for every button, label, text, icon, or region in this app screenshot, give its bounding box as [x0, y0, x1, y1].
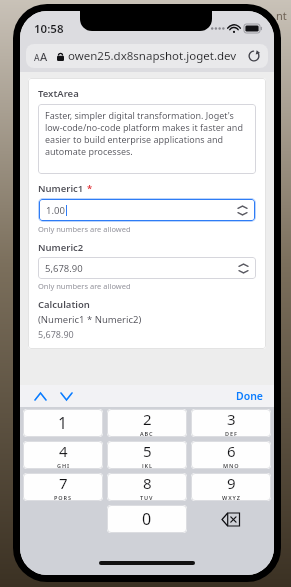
button[interactable]: 3 — [191, 409, 271, 437]
button[interactable]: Next field — [56, 386, 76, 406]
staticText: WXYZ — [222, 494, 241, 501]
staticText: nt — [276, 8, 287, 23]
staticText: 4 — [59, 441, 68, 461]
button[interactable]: 4 — [23, 441, 103, 469]
staticText: TUV — [140, 494, 154, 501]
staticText: ABC — [140, 430, 154, 437]
staticText: TextArea — [38, 87, 79, 100]
staticText: Done — [236, 389, 264, 403]
button[interactable]: 5 — [107, 441, 187, 469]
button[interactable]: Text size — [26, 44, 268, 68]
staticText: 9 — [227, 473, 236, 493]
button[interactable]: 1.00 — [39, 199, 255, 221]
staticText: (Numeric1 * Numeric2) — [38, 313, 142, 326]
button[interactable]: Reload — [247, 49, 261, 63]
staticText: Only numbers are allowed — [38, 281, 131, 291]
staticText: * — [87, 182, 93, 195]
button[interactable]: Text size — [34, 49, 48, 64]
staticText: 2 — [143, 409, 152, 429]
staticText: A — [34, 52, 40, 64]
button[interactable]: 7 — [23, 473, 103, 501]
staticText: Faster, simpler digital transformation. … — [45, 109, 249, 157]
button[interactable]: Done — [236, 389, 264, 403]
staticText: 0 — [142, 508, 152, 530]
staticText: 6 — [227, 441, 236, 461]
staticText: Only numbers are allowed — [38, 224, 131, 234]
button[interactable]: 0 — [107, 505, 187, 533]
staticText: owen25.dx8snapshot.joget.dev — [68, 48, 237, 64]
button[interactable]: 5,678.90 — [38, 257, 256, 279]
staticText: MNO — [223, 462, 240, 469]
staticText: 5,678.90 — [38, 328, 74, 340]
button[interactable]: Faster, simpler digital transformation. … — [38, 104, 256, 174]
button[interactable]: 1 — [23, 409, 103, 437]
staticText: Numeric2 — [38, 241, 84, 254]
staticText: 1.00 — [46, 204, 65, 217]
staticText: 1 — [58, 412, 68, 434]
button[interactable]: Delete — [191, 505, 271, 533]
button[interactable]: 8 — [107, 473, 187, 501]
staticText: DEF — [225, 430, 238, 437]
staticText: 7 — [59, 473, 68, 493]
staticText: A — [40, 49, 48, 64]
staticText: 5,678.90 — [45, 262, 83, 275]
staticText: 10:58 — [34, 21, 64, 37]
staticText: Calculation — [38, 298, 90, 311]
staticText: Numeric1 — [38, 182, 84, 195]
staticText: 8 — [143, 473, 152, 493]
button[interactable]: Previous field — [30, 386, 50, 406]
staticText: 3 — [227, 409, 236, 429]
button[interactable]: 9 — [191, 473, 271, 501]
button[interactable]: 6 — [191, 441, 271, 469]
staticText: 5 — [143, 441, 152, 461]
button[interactable]: 2 — [107, 409, 187, 437]
staticText: PQRS — [54, 494, 72, 501]
staticText: GHI — [57, 462, 70, 469]
staticText: JKL — [142, 462, 153, 469]
